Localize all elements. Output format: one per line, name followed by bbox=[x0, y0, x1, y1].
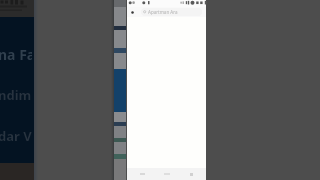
button[interactable]: Apartman Ara bbox=[141, 8, 202, 16]
button[interactable]: Recents bbox=[133, 169, 151, 179]
staticText: Apartman Ara bbox=[148, 9, 178, 15]
staticText: ndim V bbox=[0, 86, 32, 100]
button[interactable]: Back bbox=[182, 169, 200, 179]
staticText: dar V bbox=[0, 127, 32, 141]
button[interactable]: Home bbox=[158, 169, 176, 179]
button[interactable]: Back bbox=[128, 8, 136, 16]
staticText: na Fa bbox=[0, 45, 32, 60]
